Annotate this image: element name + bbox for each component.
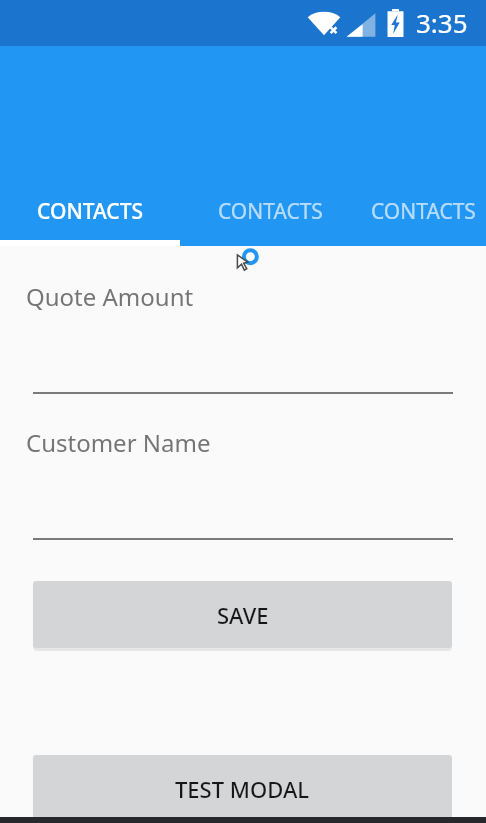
other: Pointer: [235, 249, 259, 273]
staticText: TEST MODAL: [175, 774, 310, 804]
staticText: CONTACTS: [371, 197, 476, 226]
staticText: SAVE: [217, 600, 269, 630]
staticText: CONTACTS: [218, 197, 323, 226]
button[interactable]: CONTACTS: [180, 184, 360, 246]
staticText: Quote Amount: [26, 280, 194, 313]
button[interactable]: CONTACTS: [360, 184, 486, 246]
staticText: 3:35: [416, 5, 468, 40]
button[interactable]: CONTACTS: [0, 184, 180, 246]
staticText: Customer Name: [26, 426, 211, 459]
button[interactable]: SAVE: [33, 581, 452, 648]
staticText: CONTACTS: [37, 197, 144, 226]
button[interactable]: TEST MODAL: [33, 755, 452, 822]
